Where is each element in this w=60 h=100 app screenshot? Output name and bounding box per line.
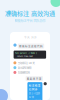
staticText: 准确标注 高效沟通 [5,9,55,17]
staticText: 语义结构已解析 [18,66,32,69]
staticText: return tree.root [15,55,33,57]
staticText: 智能标注平台 团队协作 [14,18,45,23]
staticText: 看起来不错 [27,77,42,80]
staticText: 标注结果已同步 [29,83,41,91]
staticText: 共 3 个文件 12 条 [29,92,40,99]
staticText: 点击查看详情 [29,99,41,100]
staticText: 已完成标注 128 处 [18,61,35,65]
staticText: 生成摘要文档 [18,71,30,74]
staticText: func parse() -> Node { [15,52,37,54]
staticText: 帮我标注这段代码 [19,44,43,48]
staticText: 今天 14:20 [24,35,36,39]
